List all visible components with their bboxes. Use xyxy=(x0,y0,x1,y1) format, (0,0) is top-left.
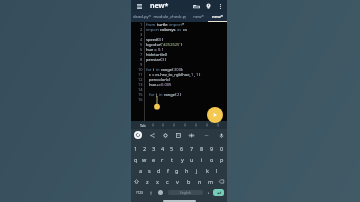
staticText: dead.py* xyxy=(133,14,151,20)
button[interactable]: Space xyxy=(168,190,203,195)
button[interactable]: 9 xyxy=(207,143,217,154)
staticText: Tab xyxy=(140,123,146,128)
button[interactable]: 1 xyxy=(131,143,140,154)
button[interactable]: Enter xyxy=(213,189,224,196)
staticText: range( xyxy=(161,67,174,72)
button[interactable]: module_check.py* xyxy=(153,12,186,22)
staticText: 7 xyxy=(140,52,143,57)
button[interactable]: 3 xyxy=(149,143,158,154)
staticText: new* xyxy=(212,14,223,20)
staticText: pencolor(c) xyxy=(149,77,171,82)
button[interactable]: Shortcut 6 xyxy=(201,121,212,129)
button[interactable]: Translate xyxy=(186,130,196,140)
button[interactable]: Run script xyxy=(207,107,223,123)
button[interactable]: w xyxy=(140,154,149,165)
button[interactable]: More options xyxy=(201,130,211,140)
button[interactable]: More options xyxy=(215,1,225,11)
button[interactable]: Open file xyxy=(191,1,202,12)
button[interactable]: Stickers xyxy=(173,130,183,140)
button[interactable]: Shift xyxy=(131,176,142,187)
button[interactable]: k xyxy=(202,165,212,176)
button[interactable]: p xyxy=(217,154,227,165)
staticText: 2 xyxy=(177,92,180,97)
button[interactable]: e xyxy=(149,154,158,165)
button[interactable]: Shortcut 7 xyxy=(212,121,223,129)
button[interactable]: t xyxy=(167,154,177,165)
staticText: 12 xyxy=(138,77,143,82)
button[interactable]: g xyxy=(172,165,182,176)
staticText: i xyxy=(201,156,203,163)
staticText: w xyxy=(142,156,147,163)
staticText: '#252525' xyxy=(162,42,181,47)
staticText: 5 xyxy=(170,145,174,152)
button[interactable]: c xyxy=(162,176,172,187)
button[interactable]: 8 xyxy=(197,143,207,154)
staticText: 1 xyxy=(191,72,194,77)
staticText: 13 xyxy=(138,82,143,87)
button[interactable]: n xyxy=(194,176,205,187)
staticText: speed( xyxy=(146,37,159,42)
button[interactable]: u xyxy=(187,154,197,165)
button[interactable]: Shortcut 5 xyxy=(190,121,201,129)
button[interactable]: Shortcut 3 xyxy=(168,121,179,129)
button[interactable]: j xyxy=(192,165,202,176)
staticText: 0 xyxy=(159,37,162,42)
staticText: c xyxy=(166,178,169,185)
button[interactable]: a xyxy=(136,165,145,176)
button[interactable]: l xyxy=(212,165,222,176)
button[interactable]: Shortcut 4 xyxy=(179,121,190,129)
button[interactable]: Share xyxy=(147,130,157,140)
button[interactable]: h xyxy=(182,165,192,176)
button[interactable]: r xyxy=(158,154,167,165)
button[interactable]: b xyxy=(183,176,194,187)
staticText: for xyxy=(146,67,153,72)
button[interactable]: o xyxy=(207,154,217,165)
staticText: s xyxy=(148,167,151,174)
staticText: 14 xyxy=(138,87,143,92)
button[interactable]: Backspace xyxy=(216,176,227,187)
staticText: x xyxy=(156,178,159,185)
button[interactable]: Tab xyxy=(138,121,148,129)
button[interactable]: Period xyxy=(205,188,211,197)
button[interactable]: Comma xyxy=(147,188,155,197)
button[interactable]: Emoji xyxy=(156,188,165,197)
button[interactable]: z xyxy=(142,176,152,187)
button[interactable]: y xyxy=(177,154,187,165)
button[interactable]: new* xyxy=(208,12,227,22)
button[interactable]: 0 xyxy=(217,143,227,154)
staticText: 16 xyxy=(138,97,143,102)
button[interactable]: f xyxy=(163,165,172,176)
button[interactable]: 6 xyxy=(177,143,187,154)
button[interactable]: x xyxy=(152,176,162,187)
button[interactable]: 4 xyxy=(158,143,167,154)
button[interactable]: q xyxy=(131,154,140,165)
button[interactable]: Google xyxy=(134,131,142,139)
button[interactable]: d xyxy=(154,165,163,176)
button[interactable]: ?123 xyxy=(134,188,145,197)
staticText: range( xyxy=(164,92,177,97)
staticText: import xyxy=(169,22,182,27)
button[interactable]: v xyxy=(172,176,183,187)
staticText: 2 xyxy=(143,145,147,152)
button[interactable]: 5 xyxy=(167,143,177,154)
staticText: hideturtle() xyxy=(146,52,168,57)
button[interactable]: Shortcut 1 xyxy=(148,121,158,129)
button[interactable]: m xyxy=(205,176,216,187)
button[interactable]: Shortcut 2 xyxy=(158,121,168,129)
button[interactable]: 7 xyxy=(187,143,197,154)
staticText: as xyxy=(177,27,183,32)
staticText: 4 xyxy=(161,145,165,152)
staticText: ?123 xyxy=(136,191,143,195)
button[interactable]: Settings xyxy=(160,130,170,140)
staticText: h xyxy=(185,167,189,174)
button[interactable]: new* xyxy=(188,12,208,22)
staticText: 15 xyxy=(138,92,143,97)
button[interactable]: 2 xyxy=(140,143,149,154)
button[interactable]: i xyxy=(197,154,207,165)
button[interactable]: Open navigation menu xyxy=(134,1,144,11)
button[interactable]: dead.py* xyxy=(131,12,153,22)
button[interactable]: Voice input xyxy=(216,130,226,140)
staticText: t xyxy=(171,156,173,163)
button[interactable]: Hints xyxy=(203,1,214,12)
button[interactable]: s xyxy=(145,165,154,176)
